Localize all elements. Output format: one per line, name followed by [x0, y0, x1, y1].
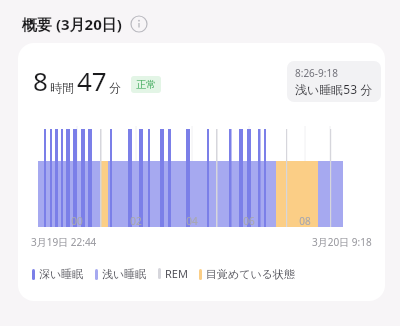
- staticText: 深い睡眠: [39, 267, 84, 281]
- staticText: REM: [165, 266, 188, 281]
- staticText: 浅い睡眠53 分: [295, 81, 373, 97]
- staticText: 3月20日 9:18: [312, 235, 372, 249]
- button[interactable]: 詳細情報: [130, 15, 148, 33]
- staticText: 02: [127, 214, 145, 228]
- staticText: 目覚めている状態: [206, 267, 296, 281]
- staticText: 3月19日 22:44: [31, 235, 97, 249]
- staticText: 8: [33, 63, 48, 98]
- staticText: 47: [77, 63, 107, 98]
- staticText: 00: [68, 214, 86, 228]
- staticText: 8:26-9:18: [295, 66, 338, 80]
- staticText: 浅い睡眠: [102, 267, 147, 281]
- staticText: 時間: [50, 80, 74, 95]
- staticText: 分: [109, 80, 121, 95]
- staticText: 概要 (3月20日): [22, 14, 122, 34]
- staticText: 04: [183, 214, 201, 228]
- staticText: 正常: [136, 78, 156, 91]
- button[interactable]: 8: [18, 43, 385, 301]
- staticText: 06: [240, 214, 258, 228]
- staticText: 08: [296, 214, 314, 228]
